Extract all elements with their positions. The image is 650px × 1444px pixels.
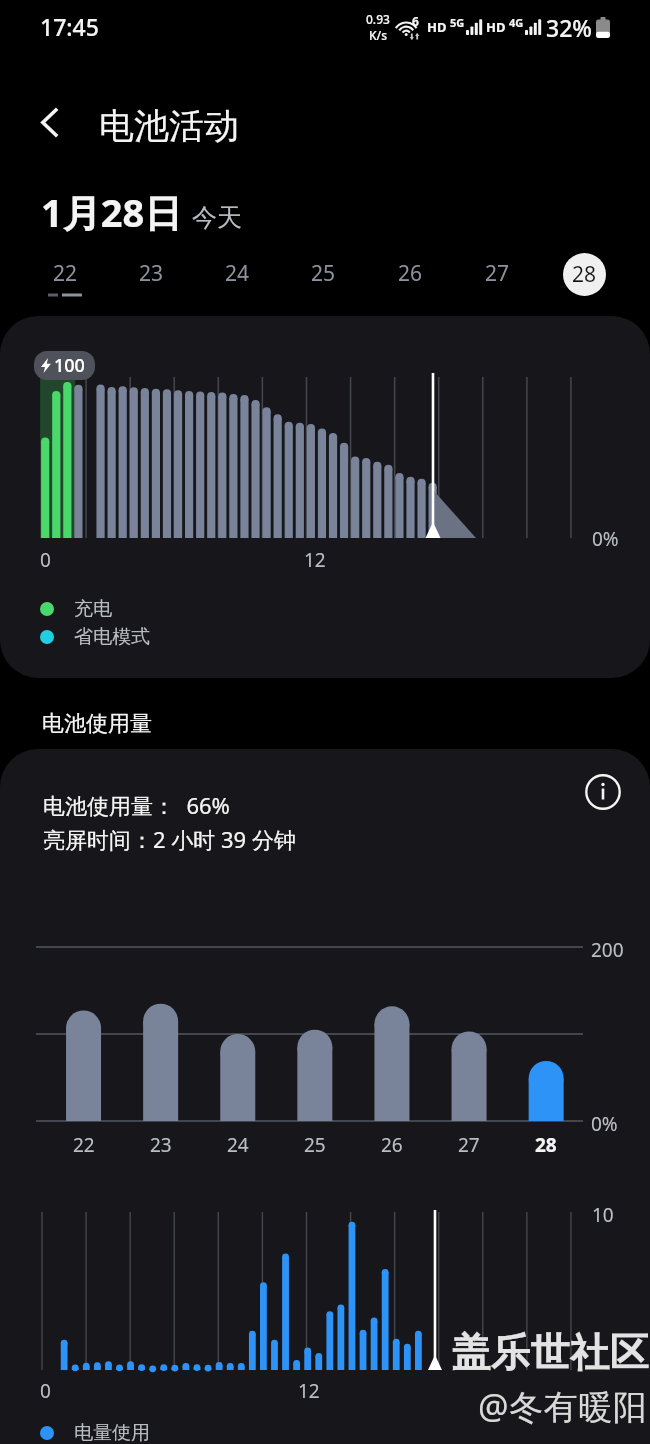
- staticText: 27: [458, 1132, 480, 1158]
- button[interactable]: 25: [280, 247, 367, 301]
- staticText: 充电: [74, 597, 112, 621]
- staticText: 24: [227, 1132, 249, 1158]
- staticText: 电池使用量: [42, 710, 152, 738]
- staticText: 今天: [192, 202, 242, 233]
- staticText: 10: [592, 1202, 614, 1228]
- staticText: K/s: [369, 27, 388, 43]
- staticText: 0: [40, 1378, 51, 1404]
- staticText: 0: [40, 547, 51, 573]
- staticText: 0%: [592, 526, 619, 552]
- staticText: 24: [225, 259, 250, 288]
- staticText: 32%: [546, 12, 592, 43]
- button[interactable]: 22: [22, 247, 108, 301]
- staticText: 电池使用量： 66%: [43, 790, 230, 820]
- staticText: 25: [304, 1132, 326, 1158]
- staticText: 省电模式: [74, 625, 150, 649]
- staticText: 22: [53, 259, 78, 288]
- staticText: 6: [412, 13, 419, 29]
- staticText: 22: [73, 1132, 95, 1158]
- button[interactable]: 充电: [40, 597, 120, 621]
- staticText: 盖乐世社区: [451, 1328, 649, 1377]
- staticText: 23: [139, 259, 164, 288]
- button[interactable]: 电量使用: [40, 1421, 158, 1444]
- staticText: 0.93: [366, 11, 390, 27]
- staticText: @冬有暖阳: [478, 1383, 648, 1429]
- staticText: 25: [311, 259, 336, 288]
- button[interactable]: 26: [367, 247, 454, 301]
- staticText: 26: [398, 259, 423, 288]
- staticText: 12: [298, 1378, 320, 1404]
- staticText: 26: [381, 1132, 403, 1158]
- button[interactable]: Back: [26, 98, 74, 146]
- staticText: HD: [486, 18, 506, 36]
- staticText: 28: [535, 1132, 557, 1158]
- button[interactable]: 27: [454, 247, 541, 301]
- staticText: 4G: [509, 15, 524, 30]
- staticText: 5G: [450, 15, 465, 30]
- button[interactable]: 省电模式: [40, 625, 158, 649]
- staticText: HD: [427, 18, 447, 36]
- staticText: 亮屏时间：2 小时 39 分钟: [43, 824, 296, 854]
- staticText: 0%: [591, 1111, 618, 1137]
- staticText: 27: [485, 259, 510, 288]
- button[interactable]: 28: [541, 247, 628, 301]
- staticText: 23: [150, 1132, 172, 1158]
- staticText: 28: [572, 260, 597, 289]
- button[interactable]: 24: [194, 247, 280, 301]
- staticText: 200: [591, 937, 624, 963]
- staticText: 17:45: [40, 11, 99, 42]
- staticText: 1月28日: [41, 186, 183, 238]
- button[interactable]: 23: [108, 247, 194, 301]
- button[interactable]: Information: [581, 770, 625, 814]
- staticText: 电量使用: [74, 1421, 150, 1444]
- staticText: 12: [304, 547, 326, 573]
- staticText: 电池活动: [99, 104, 239, 148]
- staticText: 100: [54, 353, 85, 378]
